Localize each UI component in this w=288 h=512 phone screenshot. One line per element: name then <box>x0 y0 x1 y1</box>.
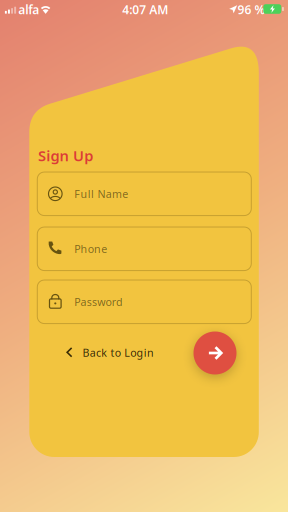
button[interactable]: Continue <box>193 331 236 374</box>
button[interactable]: Back to Login <box>61 336 159 369</box>
staticText: Phone <box>74 242 107 256</box>
staticText: Full Name <box>74 187 128 201</box>
staticText: Back to Login <box>82 345 154 360</box>
button[interactable]: Password <box>37 280 251 324</box>
staticText: 4:07 AM <box>122 1 168 17</box>
staticText: Sign Up <box>38 146 93 165</box>
button[interactable]: Full Name <box>37 172 251 216</box>
staticText: Password <box>74 295 123 309</box>
staticText: alfa <box>18 2 39 17</box>
button[interactable]: Phone <box>37 227 251 271</box>
staticText: 96 % <box>237 2 265 17</box>
